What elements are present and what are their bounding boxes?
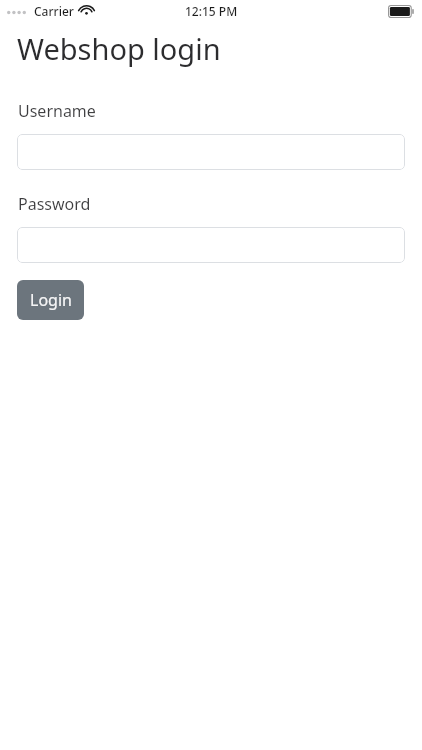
staticText: Login bbox=[30, 289, 72, 311]
other: Wi-Fi signal bbox=[79, 5, 94, 17]
other: Battery full bbox=[388, 5, 414, 18]
staticText: Username bbox=[18, 100, 96, 122]
button[interactable] bbox=[17, 227, 405, 263]
staticText: 12:15 PM bbox=[185, 3, 238, 19]
button[interactable] bbox=[17, 134, 405, 170]
staticText: Password bbox=[18, 193, 91, 215]
staticText: Carrier bbox=[34, 3, 74, 19]
staticText: Webshop login bbox=[17, 29, 221, 68]
button[interactable]: Login bbox=[17, 280, 84, 320]
